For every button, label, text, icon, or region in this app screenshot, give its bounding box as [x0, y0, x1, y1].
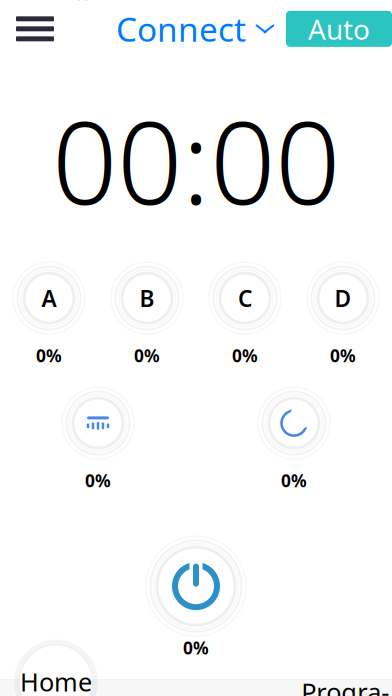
staticText: 0% [36, 344, 62, 367]
button[interactable]: 0% [146, 536, 246, 659]
staticText: 0% [134, 344, 160, 367]
button[interactable]: Program [299, 680, 392, 696]
staticText: Home [20, 665, 92, 696]
staticText: B [139, 283, 154, 313]
button[interactable]: Auto [286, 11, 392, 47]
button[interactable]: Menu [0, 6, 70, 51]
staticText: 0% [232, 344, 258, 367]
button[interactable]: 0% [62, 387, 134, 492]
staticText: 0% [183, 636, 209, 659]
button[interactable]: D [307, 262, 379, 367]
staticText: 0% [85, 469, 111, 492]
staticText: Program [301, 675, 389, 696]
staticText: A [41, 283, 56, 313]
staticText: Connect [116, 7, 246, 51]
button[interactable]: B [111, 262, 183, 367]
staticText: 0% [281, 469, 307, 492]
staticText: D [334, 283, 351, 313]
staticText: 00:00 [52, 84, 340, 236]
button[interactable]: 0% [258, 387, 330, 492]
staticText: 0% [330, 344, 356, 367]
button[interactable]: C [209, 262, 281, 367]
button[interactable]: Home [14, 640, 98, 696]
button[interactable]: Connect [110, 3, 282, 55]
button[interactable]: A [13, 262, 85, 367]
staticText: C [238, 283, 252, 313]
staticText: Auto [308, 10, 370, 47]
